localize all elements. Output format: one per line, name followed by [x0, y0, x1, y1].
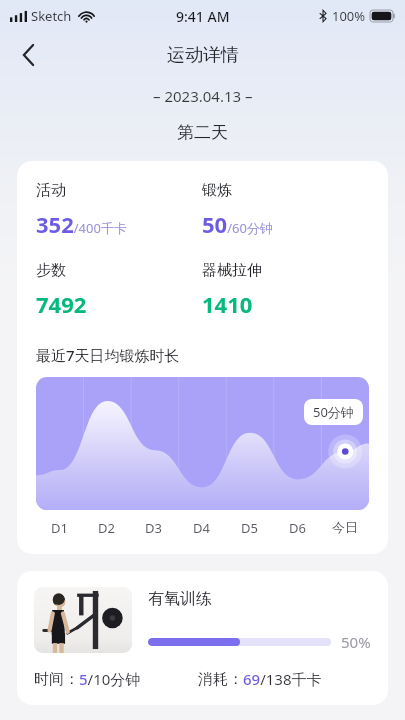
staticText: 时间： — [34, 670, 79, 689]
staticText: 50% — [341, 632, 371, 652]
staticText: 352/400千卡 — [36, 209, 127, 239]
staticText: 5/10分钟 — [79, 669, 141, 689]
staticText: 9:41 AM — [176, 7, 230, 26]
staticText: D3 — [145, 519, 162, 537]
staticText: 100% — [332, 7, 366, 25]
staticText: 7492 — [36, 289, 87, 319]
staticText: 50分钟 — [313, 403, 354, 421]
staticText: 第二天 — [177, 122, 228, 143]
staticText: 69/138千卡 — [243, 669, 322, 689]
button[interactable]: 有氧训练 — [17, 571, 388, 705]
staticText: – 2023.04.13 – — [153, 86, 253, 106]
staticText: 器械拉伸 — [202, 261, 262, 280]
staticText: 1410 — [202, 289, 253, 319]
staticText: 消耗： — [198, 670, 243, 689]
staticText: D5 — [241, 519, 258, 537]
staticText: 今日 — [332, 519, 358, 535]
staticText: D2 — [98, 519, 115, 537]
staticText: D6 — [289, 519, 306, 537]
staticText: D4 — [193, 519, 210, 537]
staticText: 最近7天日均锻炼时长 — [36, 345, 180, 365]
staticText: 50/60分钟 — [202, 209, 273, 239]
staticText: D1 — [51, 519, 68, 537]
staticText: 步数 — [36, 261, 66, 280]
staticText: Sketch — [31, 7, 72, 25]
staticText: 锻炼 — [202, 181, 232, 200]
staticText: 有氧训练 — [148, 589, 212, 609]
button[interactable]: Back — [6, 33, 50, 77]
staticText: 活动 — [36, 181, 66, 200]
staticText: 运动详情 — [167, 44, 239, 67]
